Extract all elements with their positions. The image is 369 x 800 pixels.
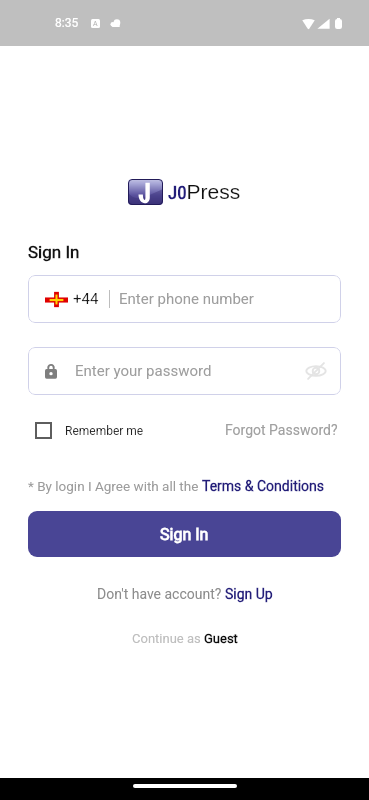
- staticText: +44: [73, 290, 99, 308]
- staticText: Don't have account?: [97, 586, 225, 602]
- other: Country flag: [45, 291, 68, 308]
- staticText: Terms & Conditions: [202, 478, 325, 494]
- staticText: Sign In: [28, 242, 80, 262]
- button[interactable]: Show password: [305, 360, 327, 382]
- staticText: Continue as: [132, 631, 204, 646]
- staticText: 8:35: [55, 16, 79, 30]
- button[interactable]: Country flag: [28, 275, 341, 323]
- staticText: Sign Up: [225, 586, 273, 602]
- staticText: Enter your password: [75, 362, 212, 380]
- staticText: J0Press: [168, 180, 241, 204]
- staticText: * By login I Agree with all the: [28, 478, 202, 494]
- button[interactable]: Enter your password: [28, 347, 341, 395]
- staticText: Forgot Password?: [225, 422, 338, 438]
- staticText: Sign In: [160, 525, 209, 544]
- staticText: Enter phone number: [119, 290, 254, 308]
- staticText: Guest: [204, 631, 238, 646]
- staticText: A: [93, 20, 98, 28]
- button[interactable]: Sign Up: [225, 586, 273, 602]
- staticText: Remember me: [65, 424, 144, 438]
- button[interactable]: J0Press: [128, 179, 241, 205]
- button[interactable]: Remember me: [28, 422, 144, 439]
- button[interactable]: Guest: [204, 631, 238, 646]
- button[interactable]: Sign In: [28, 511, 341, 557]
- button[interactable]: Terms & Conditions: [202, 478, 325, 494]
- button[interactable]: Forgot Password?: [225, 422, 341, 438]
